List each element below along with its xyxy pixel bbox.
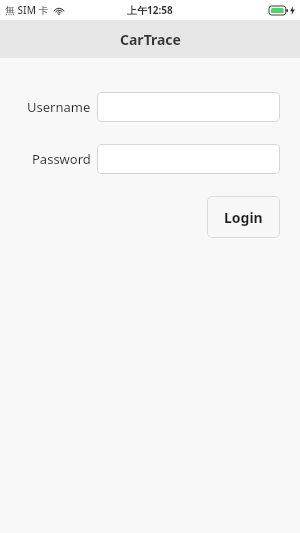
staticText: Username [27, 98, 91, 116]
staticText: CarTrace [120, 30, 181, 49]
button[interactable]: Login [207, 196, 280, 238]
button[interactable] [97, 92, 280, 122]
staticText: 無 SIM 卡 [5, 3, 49, 17]
staticText: Password [32, 150, 91, 168]
staticText: Login [224, 208, 263, 227]
staticText: 上午12:58 [127, 3, 173, 17]
button[interactable] [97, 144, 280, 174]
